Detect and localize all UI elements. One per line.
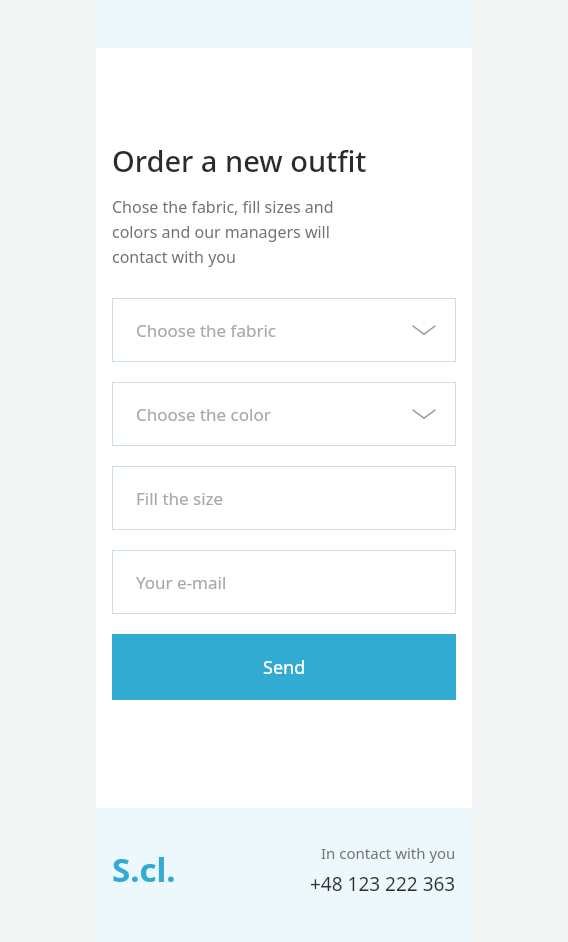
button[interactable]: Choose the color	[112, 382, 456, 446]
button[interactable]: S.cl.	[112, 847, 176, 892]
staticText: Chose the fabric, fill sizes and colors …	[112, 196, 334, 267]
other: Expand Choose the color	[413, 407, 435, 421]
staticText: Order a new outfit	[112, 141, 367, 180]
button[interactable]: Your e-mail	[112, 550, 456, 614]
staticText: Fill the size	[136, 487, 224, 510]
staticText: In contact with you	[321, 843, 456, 863]
button[interactable]: Choose the fabric	[112, 298, 456, 362]
staticText: Your e-mail	[136, 571, 227, 594]
button[interactable]: Fill the size	[112, 466, 456, 530]
staticText: +48 123 222 363	[310, 871, 456, 897]
button[interactable]: +48 123 222 363	[310, 871, 456, 897]
button[interactable]: Send	[112, 634, 456, 700]
staticText: Choose the fabric	[136, 319, 277, 342]
other: Expand Choose the fabric	[413, 323, 435, 337]
staticText: Choose the color	[136, 403, 271, 426]
staticText: S.cl.	[112, 847, 176, 892]
staticText: Send	[263, 655, 306, 680]
